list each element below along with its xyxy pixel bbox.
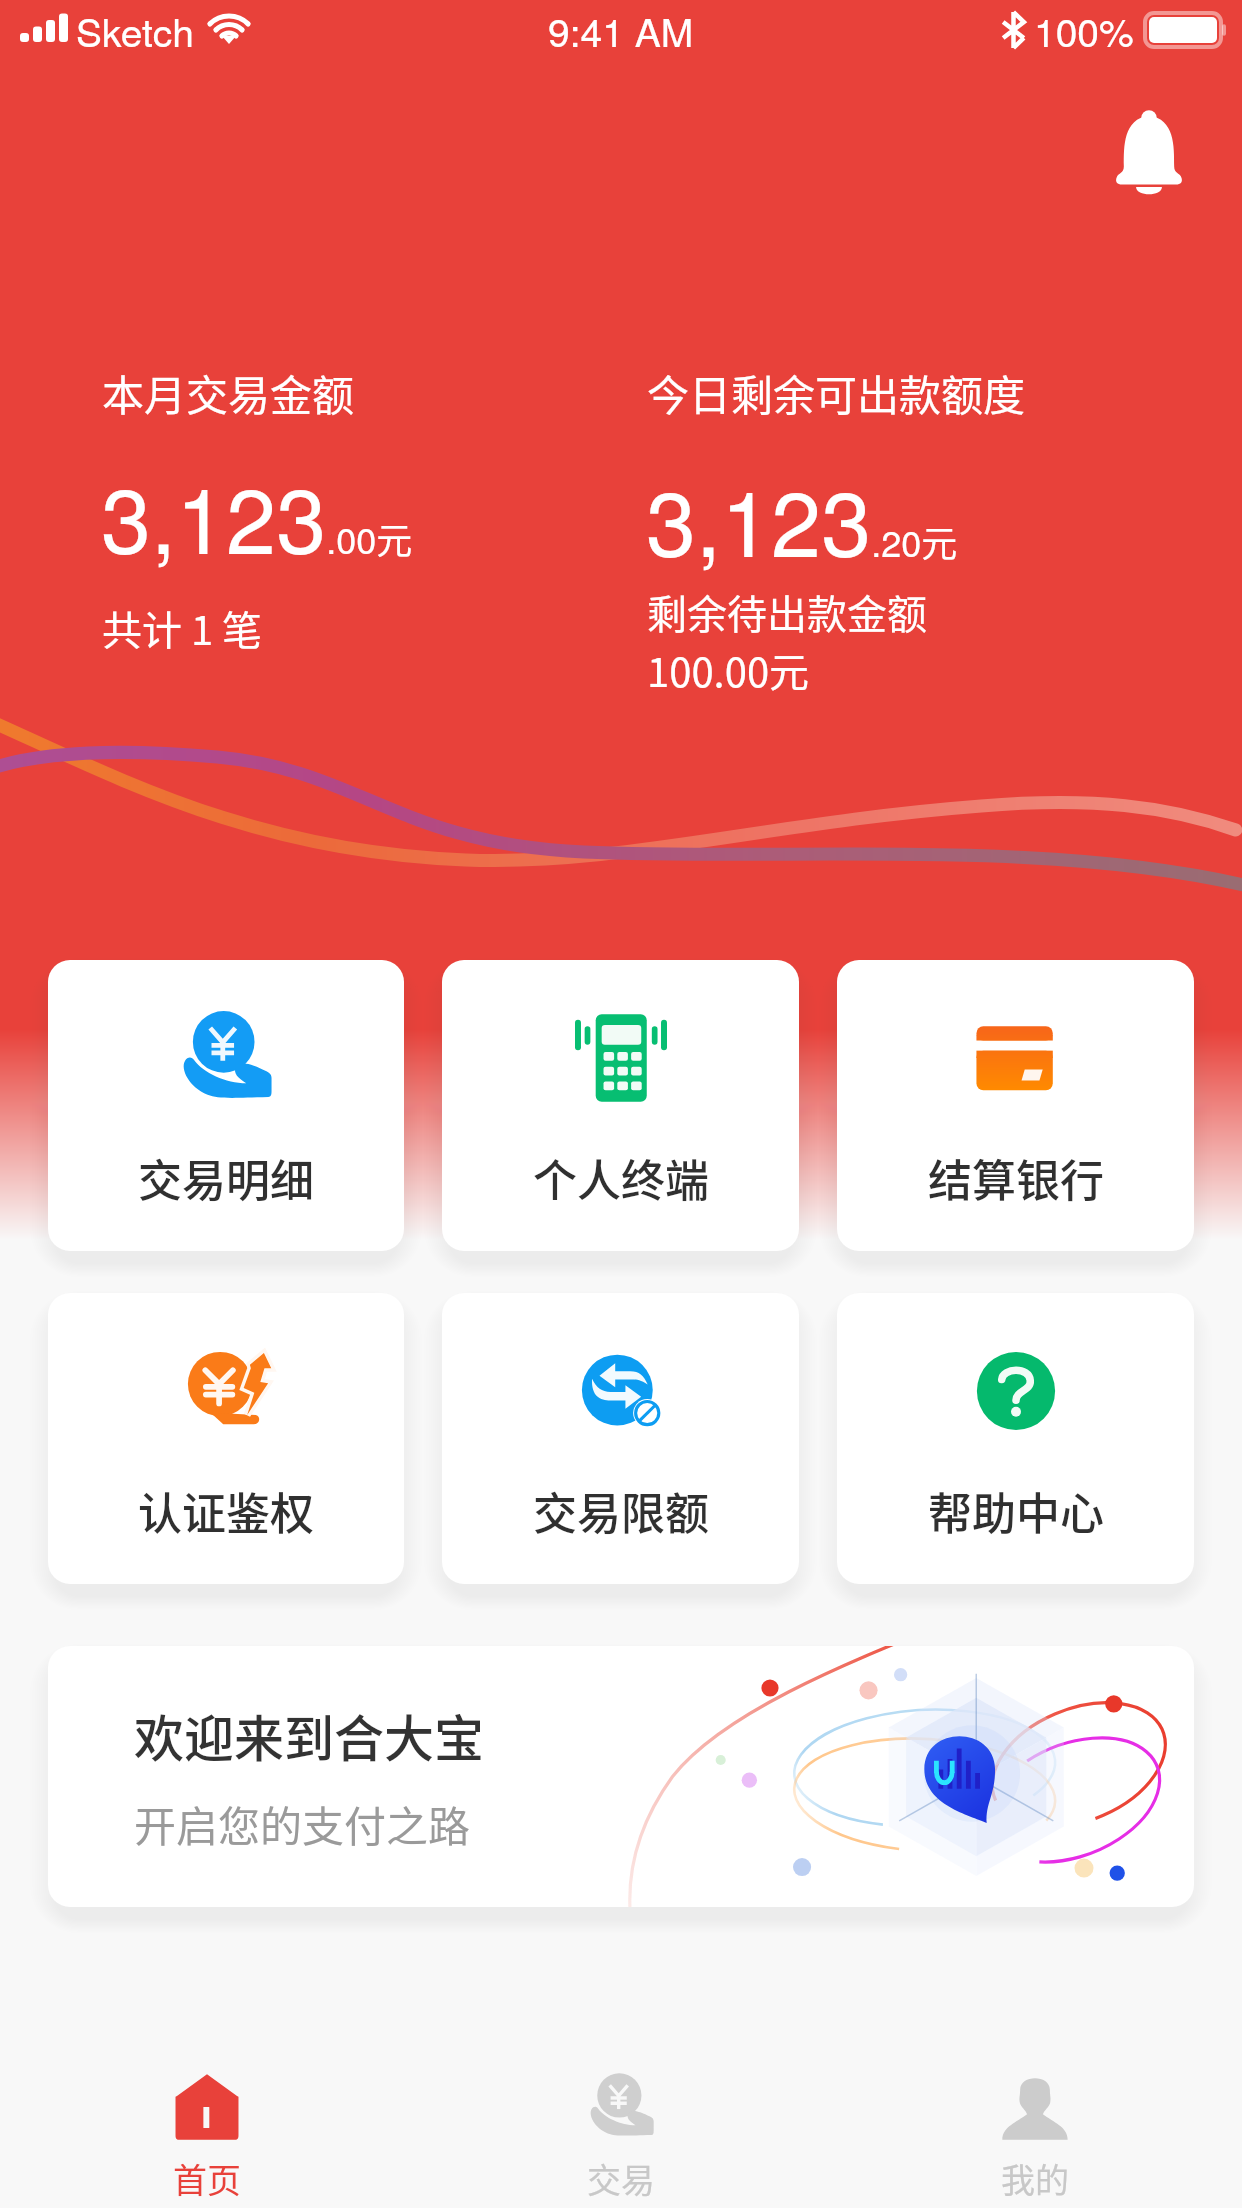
button[interactable]: 交易 — [414, 2028, 828, 2208]
staticText: 交易明细 — [138, 1146, 314, 1210]
staticText: 100.00元 — [647, 641, 810, 699]
button[interactable]: Notifications — [1084, 88, 1214, 218]
staticText: 9:41 AM — [548, 2, 694, 58]
button[interactable]: 个人终端 — [442, 960, 799, 1251]
staticText: 100% — [1034, 2, 1134, 58]
button[interactable]: 我的 — [828, 2028, 1242, 2208]
staticText: 认证鉴权 — [138, 1479, 314, 1543]
staticText: 剩余待出款金额 — [647, 583, 927, 641]
staticText: 开启您的支付之路 — [134, 1793, 471, 1854]
staticText: 我的 — [1001, 2154, 1069, 2203]
staticText: 3,123.20元 — [646, 454, 958, 583]
staticText: Sketch — [76, 2, 195, 58]
button[interactable]: 首页 — [0, 2028, 414, 2208]
staticText: 结算银行 — [928, 1146, 1104, 1210]
staticText: 3,123.00元 — [101, 451, 413, 580]
staticText: 欢迎来到合大宝 — [134, 1699, 484, 1771]
staticText: 本月交易金额 — [102, 362, 355, 423]
staticText: 帮助中心 — [928, 1479, 1104, 1543]
button[interactable]: 结算银行 — [837, 960, 1194, 1251]
button[interactable]: 欢迎来到合大宝 — [48, 1646, 1194, 1907]
staticText: 首页 — [173, 2154, 241, 2203]
button[interactable]: 交易明细 — [48, 960, 404, 1251]
button[interactable]: 帮助中心 — [837, 1293, 1194, 1584]
staticText: 共计 1 笔 — [102, 599, 263, 657]
button[interactable]: 交易限额 — [442, 1293, 799, 1584]
staticText: 今日剩余可出款额度 — [647, 362, 1026, 423]
staticText: 个人终端 — [533, 1146, 709, 1210]
button[interactable]: 认证鉴权 — [48, 1293, 404, 1584]
staticText: 交易限额 — [533, 1479, 709, 1543]
staticText: 交易 — [587, 2154, 655, 2203]
